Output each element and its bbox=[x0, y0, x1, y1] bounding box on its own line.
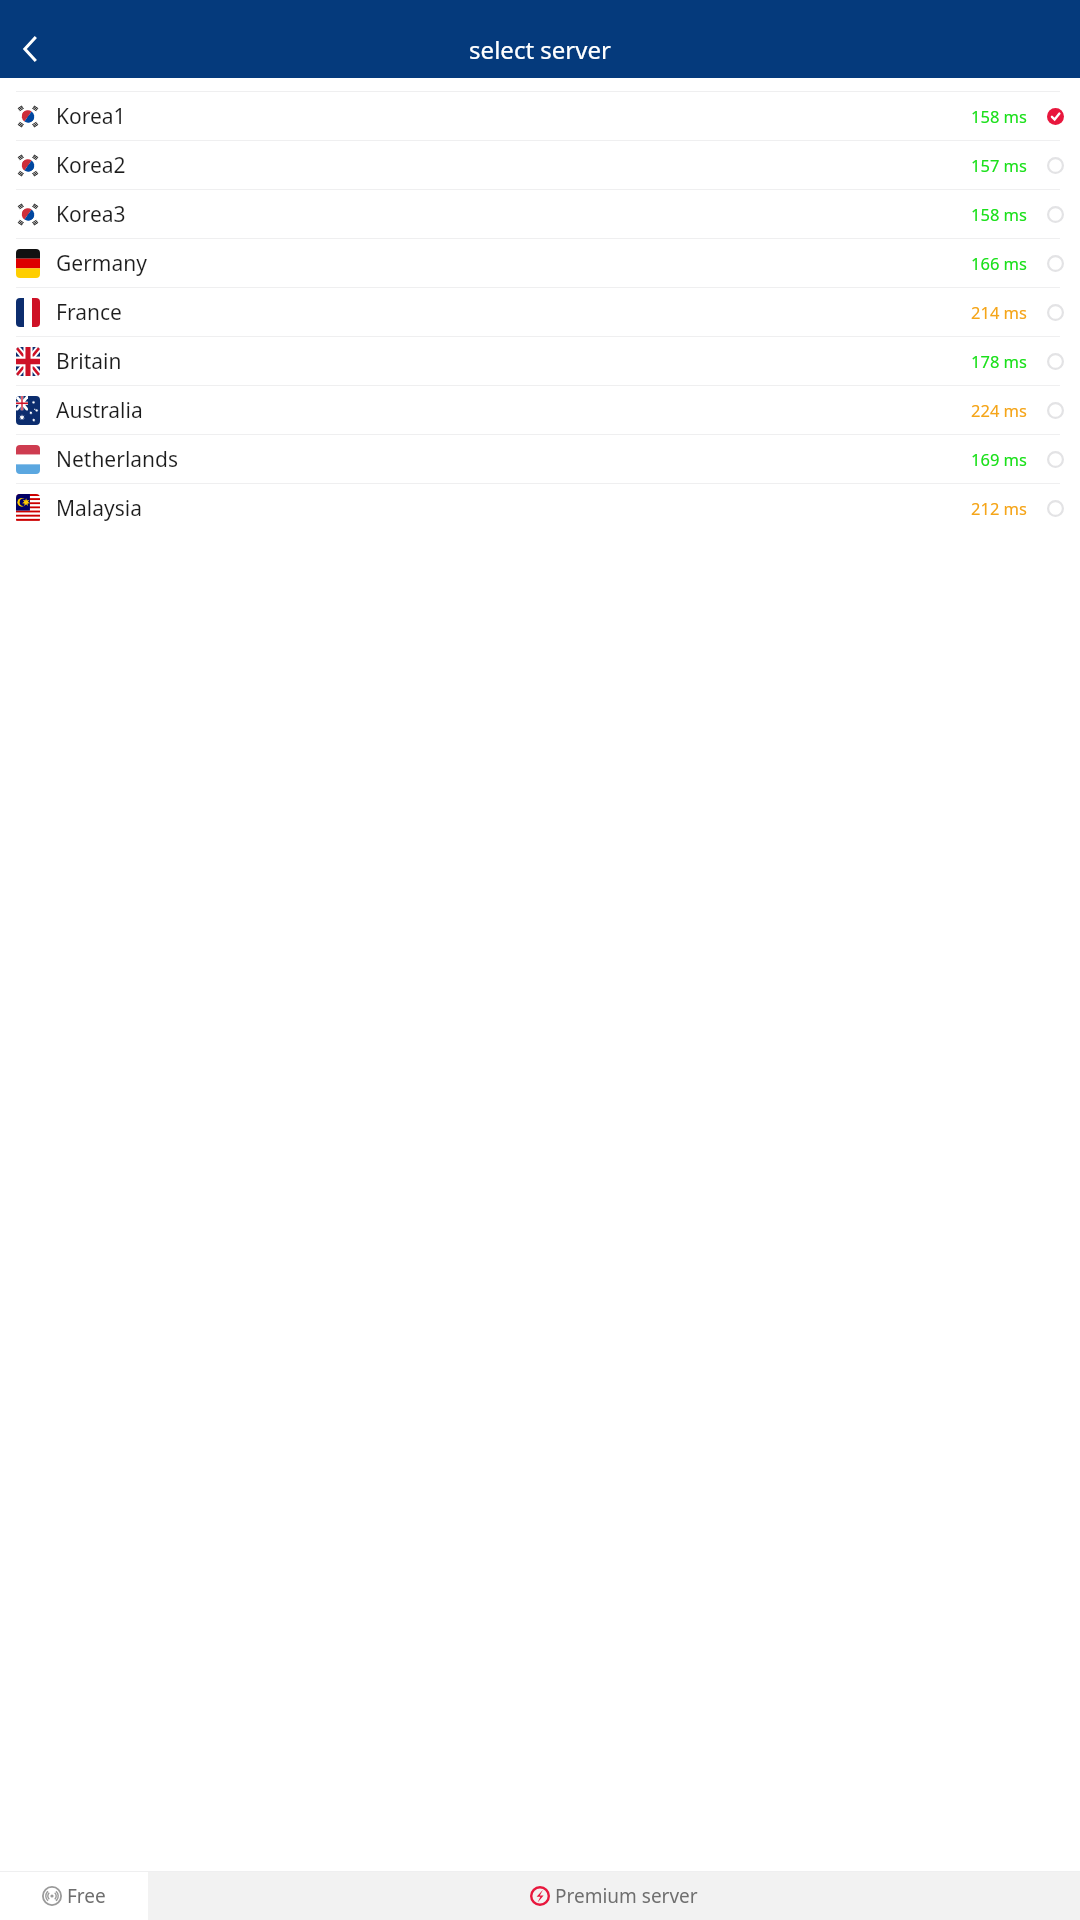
staticText: 157 ms bbox=[971, 154, 1027, 176]
staticText: 166 ms bbox=[971, 252, 1027, 274]
button[interactable]: Select bbox=[1047, 451, 1064, 468]
staticText: Premium server bbox=[555, 1883, 698, 1909]
button[interactable]: Germany bbox=[0, 239, 1080, 287]
button[interactable]: Malaysia bbox=[0, 484, 1080, 532]
staticText: 214 ms bbox=[971, 301, 1027, 323]
staticText: France bbox=[56, 298, 971, 327]
button[interactable]: Back bbox=[0, 30, 62, 68]
staticText: Free bbox=[67, 1883, 106, 1909]
button[interactable]: Select bbox=[1047, 402, 1064, 419]
staticText: Germany bbox=[56, 249, 971, 278]
button[interactable]: Australia bbox=[0, 386, 1080, 434]
button[interactable]: Korea3 bbox=[0, 190, 1080, 238]
button[interactable]: Select bbox=[1047, 304, 1064, 321]
button[interactable]: Selected bbox=[1047, 108, 1064, 125]
staticText: Korea3 bbox=[56, 200, 971, 229]
button[interactable]: Britain bbox=[0, 337, 1080, 385]
button[interactable]: Select bbox=[1047, 206, 1064, 223]
button[interactable]: Select bbox=[1047, 255, 1064, 272]
button[interactable]: Select bbox=[1047, 157, 1064, 174]
staticText: Britain bbox=[56, 347, 971, 376]
staticText: Korea2 bbox=[56, 151, 971, 180]
button[interactable]: Netherlands bbox=[0, 435, 1080, 483]
staticText: Korea1 bbox=[56, 102, 971, 131]
staticText: Australia bbox=[56, 396, 971, 425]
button[interactable]: Korea2 bbox=[0, 141, 1080, 189]
button[interactable]: Premium server bbox=[148, 1872, 1080, 1920]
staticText: Malaysia bbox=[56, 494, 971, 523]
staticText: 158 ms bbox=[971, 203, 1027, 225]
button[interactable]: Select bbox=[1047, 500, 1064, 517]
button[interactable]: Select bbox=[1047, 353, 1064, 370]
staticText: 158 ms bbox=[971, 105, 1027, 127]
staticText: Netherlands bbox=[56, 445, 971, 474]
staticText: select server bbox=[0, 33, 1080, 66]
button[interactable]: France bbox=[0, 288, 1080, 336]
staticText: 224 ms bbox=[971, 399, 1027, 421]
button[interactable]: Korea1 bbox=[0, 92, 1080, 140]
staticText: 212 ms bbox=[971, 497, 1027, 519]
button[interactable]: Free bbox=[0, 1872, 148, 1920]
staticText: 169 ms bbox=[971, 448, 1027, 470]
staticText: 178 ms bbox=[971, 350, 1027, 372]
